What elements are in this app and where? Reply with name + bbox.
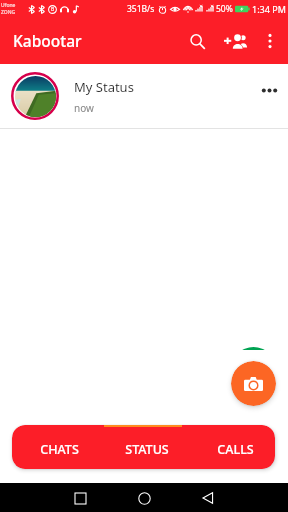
staticText: 1:34 PM [252,3,286,15]
staticText: My Status [74,78,134,96]
button[interactable]: CHATS [12,425,99,469]
staticText: 50% [216,3,233,15]
button[interactable]: CALLS [187,425,275,469]
button[interactable]: Recents [66,484,94,512]
button[interactable]: More options [254,25,286,57]
button[interactable]: Search [178,22,216,60]
button[interactable]: My Status [0,64,288,128]
staticText: 351B/s [127,3,155,15]
button[interactable]: Add contact [216,22,254,60]
button[interactable]: Back [194,484,222,512]
button[interactable]: STATUS [99,425,187,469]
staticText: Kabootar [13,30,82,51]
staticText: now [74,101,94,115]
staticText: Ufone [1,2,16,9]
staticText: STATUS [125,441,169,458]
staticText: ZONG [1,9,16,16]
staticText: CHATS [40,441,79,458]
staticText: B [51,6,55,13]
button[interactable]: Camera [231,361,276,406]
staticText: CALLS [217,441,254,458]
button[interactable]: More [250,71,288,109]
button[interactable]: Home [130,484,158,512]
